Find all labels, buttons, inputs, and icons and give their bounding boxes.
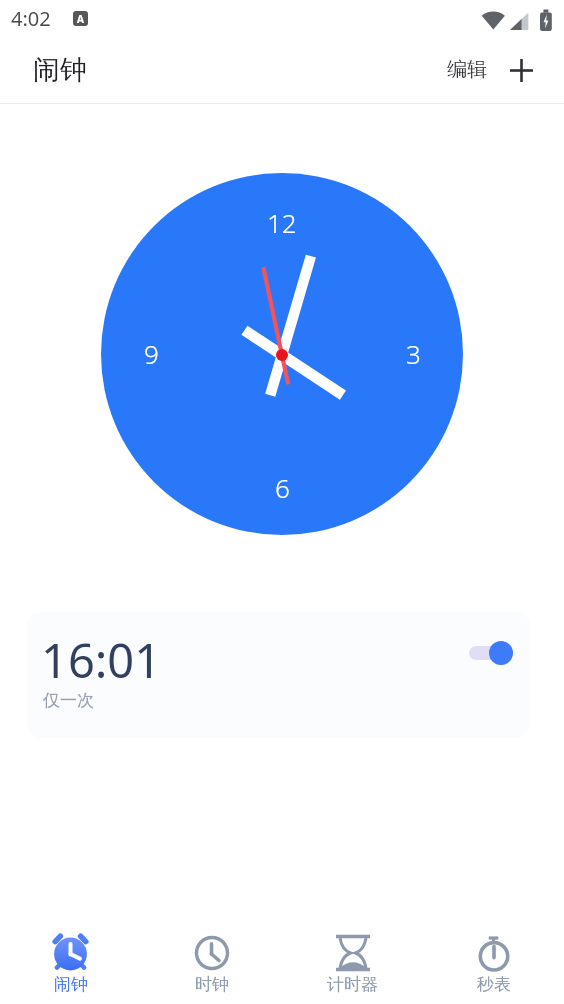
staticText: 16:01 bbox=[41, 628, 162, 692]
staticText: 计时器 bbox=[327, 974, 378, 995]
staticText: 4:02 bbox=[11, 5, 51, 32]
staticText: 闹钟 bbox=[33, 53, 87, 87]
button[interactable]: 计时器 bbox=[282, 928, 423, 1004]
button[interactable] bbox=[505, 54, 537, 86]
staticText: 闹钟 bbox=[54, 974, 88, 995]
staticText: 6 bbox=[275, 470, 290, 505]
staticText: 3 bbox=[406, 336, 421, 371]
button[interactable]: 编辑 bbox=[443, 53, 491, 86]
button[interactable] bbox=[469, 641, 513, 665]
button[interactable]: 闹钟 bbox=[0, 928, 141, 1004]
button[interactable]: 时钟 bbox=[141, 928, 282, 1004]
staticText: 9 bbox=[144, 336, 159, 371]
staticText: 秒表 bbox=[477, 974, 511, 995]
staticText: 时钟 bbox=[195, 974, 229, 995]
button[interactable]: 秒表 bbox=[423, 928, 564, 1004]
staticText: 12 bbox=[267, 205, 297, 240]
staticText: 编辑 bbox=[447, 57, 487, 82]
staticText: 仅一次 bbox=[43, 690, 94, 711]
staticText: A bbox=[77, 12, 84, 26]
button[interactable]: 16:01 bbox=[27, 612, 530, 738]
